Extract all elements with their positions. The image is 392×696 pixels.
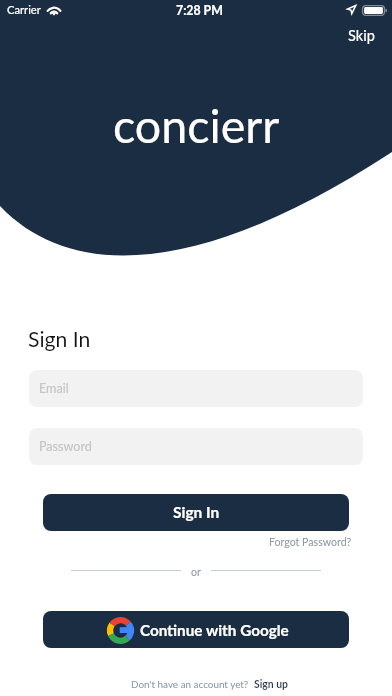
staticText: Forgot Password? bbox=[269, 536, 352, 549]
button[interactable]: Forgot Password? bbox=[263, 532, 358, 553]
staticText: Skip bbox=[348, 27, 375, 45]
button[interactable]: Sign In bbox=[43, 494, 349, 531]
staticText: Password bbox=[39, 439, 92, 454]
staticText: Sign In bbox=[28, 326, 91, 351]
staticText: Continue with Google bbox=[140, 621, 289, 639]
staticText: Sign up bbox=[254, 678, 288, 690]
staticText: 7:28 PM bbox=[176, 3, 223, 18]
button[interactable]: Sign up bbox=[249, 678, 288, 690]
button[interactable]: Skip bbox=[340, 22, 383, 50]
staticText: or bbox=[191, 566, 201, 579]
staticText: concierr bbox=[113, 97, 280, 153]
button[interactable]: Password bbox=[29, 428, 363, 465]
staticText: Don't have an account yet? bbox=[131, 678, 249, 690]
button[interactable]: Continue with Google bbox=[43, 611, 349, 648]
button[interactable]: Email bbox=[29, 370, 363, 407]
staticText: Email bbox=[39, 381, 69, 396]
staticText: Sign In bbox=[173, 503, 220, 522]
staticText: Carrier bbox=[7, 3, 41, 16]
